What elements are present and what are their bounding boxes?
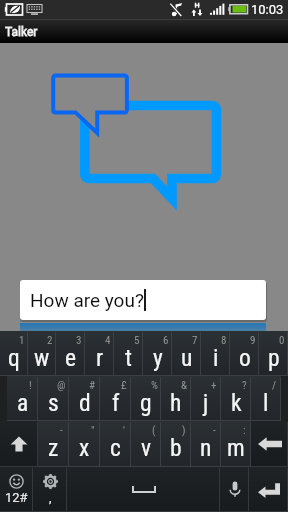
button[interactable]: !	[7, 376, 38, 421]
staticText: !	[29, 379, 32, 392]
staticText: ,	[49, 490, 52, 505]
staticText: e	[65, 344, 77, 372]
button[interactable]: £	[100, 376, 131, 421]
staticText: 6	[163, 334, 169, 347]
button[interactable]: ?	[221, 376, 251, 421]
staticText: '	[123, 424, 125, 437]
button[interactable]: Backspace	[251, 421, 288, 467]
button[interactable]: :	[221, 421, 251, 467]
staticText: o	[239, 344, 251, 372]
button[interactable]: "	[69, 421, 100, 467]
button[interactable]: @	[38, 376, 69, 421]
staticText: :	[243, 424, 246, 437]
staticText: g	[140, 389, 152, 417]
staticText: How are you?	[30, 289, 144, 311]
staticText: q	[8, 344, 20, 372]
staticText: +	[211, 379, 217, 392]
staticText: l	[263, 389, 269, 417]
staticText: u	[181, 344, 193, 372]
button[interactable]: 4	[85, 331, 114, 376]
staticText: 8	[221, 334, 227, 347]
staticText: y	[153, 344, 163, 372]
button[interactable]: %	[131, 376, 161, 421]
staticText: 2	[47, 334, 53, 347]
button[interactable]: Symbols	[0, 467, 33, 512]
staticText: "	[91, 424, 95, 437]
button[interactable]: How are you?	[20, 280, 266, 320]
staticText: ?	[242, 379, 247, 392]
staticText: j	[203, 389, 209, 417]
staticText: (	[152, 424, 156, 437]
staticText: %	[151, 379, 158, 392]
staticText: 0	[279, 334, 285, 347]
button[interactable]: Talker	[0, 20, 288, 43]
staticText: 10:03	[251, 2, 284, 17]
button[interactable]: 6	[143, 331, 172, 376]
staticText: r	[96, 344, 104, 372]
staticText: )	[182, 424, 186, 437]
button[interactable]: /	[251, 376, 281, 421]
button[interactable]: -	[191, 421, 221, 467]
button[interactable]: 7	[172, 331, 201, 376]
staticText: #	[89, 379, 96, 392]
button[interactable]: '	[100, 421, 131, 467]
button[interactable]: 3	[56, 331, 85, 376]
button[interactable]: Voice input	[220, 467, 249, 512]
staticText: i	[213, 344, 219, 372]
button[interactable]: #	[69, 376, 100, 421]
staticText: f	[112, 389, 120, 417]
staticText: p	[268, 344, 280, 372]
button[interactable]: Settings	[33, 467, 67, 512]
staticText: /	[272, 379, 277, 392]
button[interactable]: &	[161, 376, 191, 421]
staticText: £	[121, 379, 127, 392]
button[interactable]: 1	[0, 331, 28, 376]
staticText: m	[227, 434, 245, 462]
button[interactable]: (	[131, 421, 161, 467]
staticText: v	[141, 434, 152, 462]
button[interactable]: )	[161, 421, 191, 467]
button[interactable]: 2	[28, 331, 56, 376]
staticText: @	[57, 379, 66, 392]
staticText: n	[200, 434, 212, 462]
staticText: t	[125, 344, 132, 372]
staticText: -	[60, 424, 63, 437]
button[interactable]: 9	[230, 331, 259, 376]
staticText: w	[34, 344, 50, 372]
staticText: &	[181, 379, 187, 392]
button[interactable]: -	[38, 421, 69, 467]
staticText: 7	[192, 334, 198, 347]
staticText: 5	[134, 334, 140, 347]
button[interactable]: 0	[259, 331, 288, 376]
staticText: z	[48, 434, 59, 462]
staticText: 12#	[5, 490, 28, 505]
button[interactable]: Shift	[0, 421, 38, 467]
staticText: k	[231, 389, 242, 417]
staticText: 1	[19, 334, 25, 347]
button[interactable]: 5	[114, 331, 143, 376]
staticText: s	[48, 389, 59, 417]
button[interactable]: +	[191, 376, 221, 421]
staticText: 4	[105, 334, 111, 347]
button[interactable]: Enter	[249, 467, 288, 512]
button[interactable]: 8	[201, 331, 230, 376]
staticText: h	[170, 389, 182, 417]
staticText: b	[170, 434, 182, 462]
staticText: Talker	[5, 25, 38, 39]
staticText: x	[79, 434, 90, 462]
staticText: 9	[250, 334, 256, 347]
button[interactable]: Space	[67, 467, 220, 512]
staticText: a	[17, 389, 29, 417]
staticText: c	[110, 434, 121, 462]
staticText: -	[213, 424, 216, 437]
staticText: d	[79, 389, 91, 417]
staticText: 3	[76, 334, 82, 347]
